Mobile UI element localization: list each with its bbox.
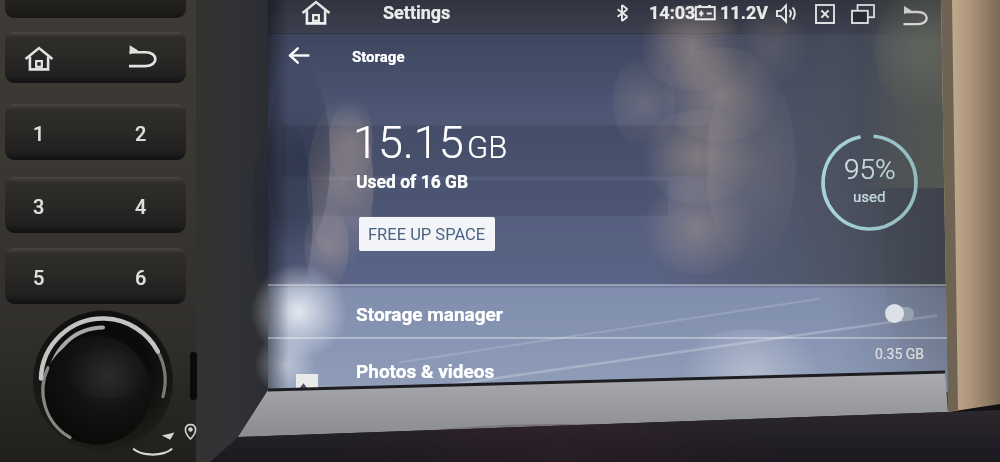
button[interactable]: FREE UP SPACE [359, 217, 495, 251]
staticText: 95% [844, 153, 896, 186]
staticText: 11.2V [720, 2, 768, 23]
button[interactable]: Navigate up [284, 40, 314, 70]
button[interactable]: Home [298, 0, 334, 31]
button[interactable]: Storage manager toggle [888, 307, 914, 321]
button[interactable] [5, 0, 186, 18]
button[interactable]: Volume knob [30, 312, 176, 458]
staticText: 0.35 GB [875, 346, 925, 362]
staticText: GB [467, 129, 508, 165]
button[interactable]: 3 [5, 177, 186, 233]
staticText: Photos & videos [356, 360, 495, 382]
staticText: 6 [135, 266, 147, 289]
staticText: 3 [33, 195, 45, 218]
staticText: 15.15 [353, 116, 464, 169]
button[interactable]: Back [898, 1, 930, 33]
button[interactable]: 5 [5, 248, 186, 304]
button[interactable]: Close [816, 5, 834, 23]
staticText: 5 [33, 266, 45, 289]
staticText: Storage manager [356, 303, 503, 325]
staticText: 1 [33, 122, 45, 145]
staticText: 2 [135, 122, 147, 145]
staticText: 4 [135, 195, 147, 218]
staticText: Used of 16 GB [356, 172, 469, 193]
staticText: used [853, 188, 886, 206]
button[interactable]: Storage manager [268, 286, 958, 337]
button[interactable]: Volume [776, 4, 796, 23]
button[interactable] [5, 32, 186, 83]
staticText: Settings [383, 2, 451, 23]
button[interactable]: Recents [852, 5, 874, 23]
staticText: 14:03 [649, 2, 696, 23]
staticText: FREE UP SPACE [368, 225, 486, 244]
staticText: Storage [352, 48, 405, 66]
button[interactable]: Photos & videos [268, 339, 958, 392]
button[interactable]: 1 [5, 104, 186, 160]
